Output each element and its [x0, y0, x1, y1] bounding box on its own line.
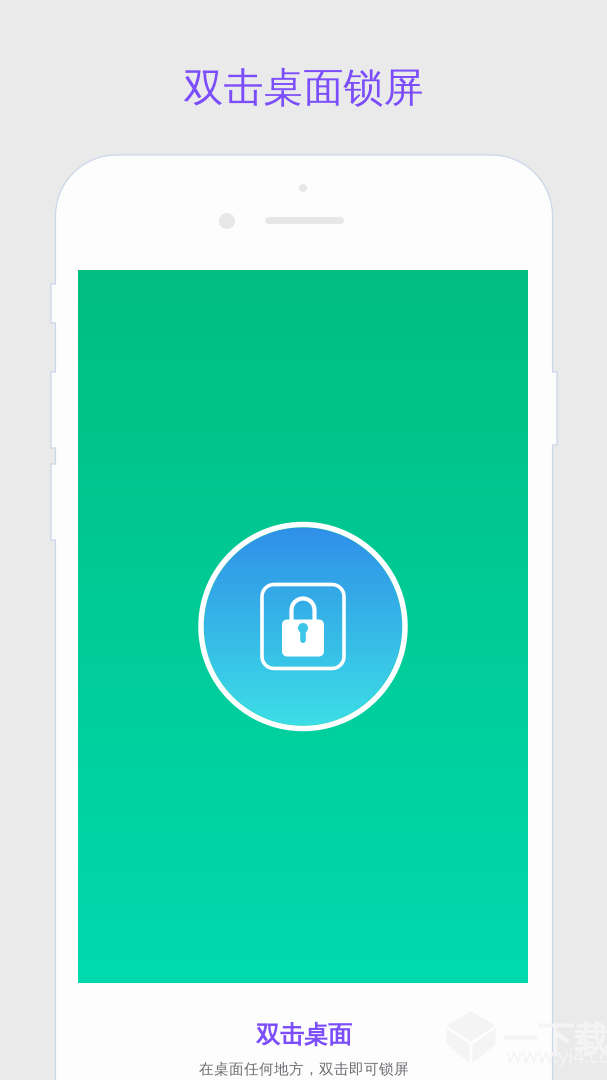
staticText: 双击桌面锁屏	[183, 63, 423, 112]
staticText: 双击桌面	[256, 1020, 352, 1049]
staticText: 一下载	[502, 1018, 607, 1062]
button[interactable]: Lock screen	[198, 521, 408, 731]
staticText: 在桌面任何地方，双击即可锁屏	[199, 1060, 409, 1078]
staticText: www.yi4.com	[506, 1042, 607, 1069]
